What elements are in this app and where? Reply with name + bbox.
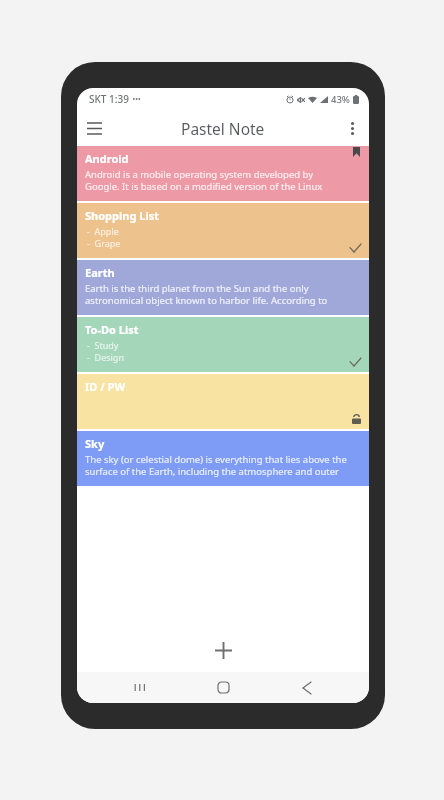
staticText: The sky (or celestial dome) is everythin… [85, 453, 347, 478]
button[interactable]: More options [335, 111, 369, 145]
button[interactable]: Sky [77, 431, 369, 486]
staticText: - Study [87, 339, 119, 351]
button[interactable]: Shopping List [77, 203, 369, 258]
staticText: Earth is the third planet from the Sun a… [85, 282, 347, 307]
staticText: - Grape [87, 237, 121, 249]
button[interactable]: Earth [77, 260, 369, 315]
staticText: Shopping List [85, 208, 159, 223]
staticText: 43% [331, 93, 350, 106]
button[interactable]: Android [77, 146, 369, 201]
button[interactable]: To-Do List [77, 317, 369, 372]
button[interactable]: Menu [77, 111, 111, 145]
staticText: Android [85, 151, 129, 166]
staticText: - Design [87, 351, 124, 363]
staticText: Pastel Note [181, 118, 265, 139]
staticText: SKT 1:39 [89, 92, 129, 106]
staticText: ID / PW [85, 379, 126, 394]
staticText: Earth [85, 265, 115, 280]
staticText: Android is a mobile operating system dev… [85, 168, 347, 193]
button[interactable]: ID / PW [77, 374, 369, 429]
staticText: To-Do List [85, 322, 139, 337]
button[interactable]: Home [201, 672, 245, 703]
staticText: - Apple [87, 225, 119, 237]
button[interactable]: Back [285, 672, 329, 703]
button[interactable]: Add note [206, 633, 240, 667]
staticText: Sky [85, 436, 105, 451]
button[interactable]: Recents [117, 672, 161, 703]
